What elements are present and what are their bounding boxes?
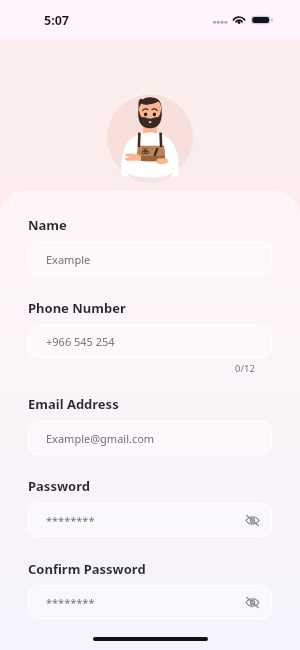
button[interactable]: Toggle password visibility (242, 592, 262, 612)
button[interactable]: ******** (28, 503, 272, 537)
button[interactable]: Example@gmail.com (28, 421, 272, 455)
staticText: ******** (46, 595, 242, 610)
button[interactable]: +966 545 254 (28, 324, 272, 358)
staticText: Example (46, 252, 262, 267)
staticText: Name (28, 216, 67, 234)
staticText: Email Address (28, 395, 119, 413)
staticText: 0/12 (235, 362, 255, 375)
staticText: +966 545 254 (46, 334, 262, 349)
staticText: Confirm Password (28, 560, 146, 578)
staticText: 5:07 (44, 12, 69, 29)
staticText: Example@gmail.com (46, 431, 262, 446)
button[interactable]: ******** (28, 585, 272, 619)
staticText: Password (28, 477, 90, 495)
button[interactable]: Example (28, 242, 272, 276)
staticText: Phone Number (28, 299, 126, 317)
staticText: ******** (46, 513, 242, 528)
button[interactable]: Toggle password visibility (242, 510, 262, 530)
